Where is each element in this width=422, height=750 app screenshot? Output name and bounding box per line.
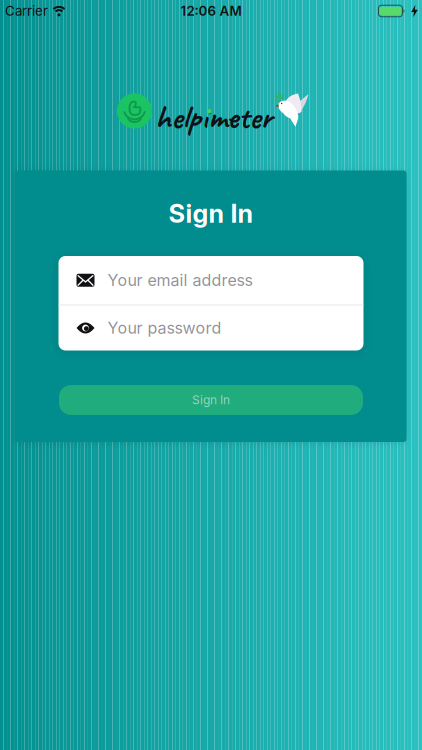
button[interactable]: Your email address [58, 256, 363, 304]
button[interactable]: Sign In [59, 385, 363, 415]
staticText: helpimeter [155, 96, 272, 138]
button[interactable]: Your password [58, 305, 363, 350]
staticText: Your password [107, 319, 221, 337]
staticText: Your email address [107, 271, 252, 290]
staticText: Sign In [168, 199, 253, 228]
staticText: 12:06 AM [180, 3, 241, 19]
staticText: Carrier [5, 3, 48, 19]
staticText: Sign In [192, 393, 230, 407]
